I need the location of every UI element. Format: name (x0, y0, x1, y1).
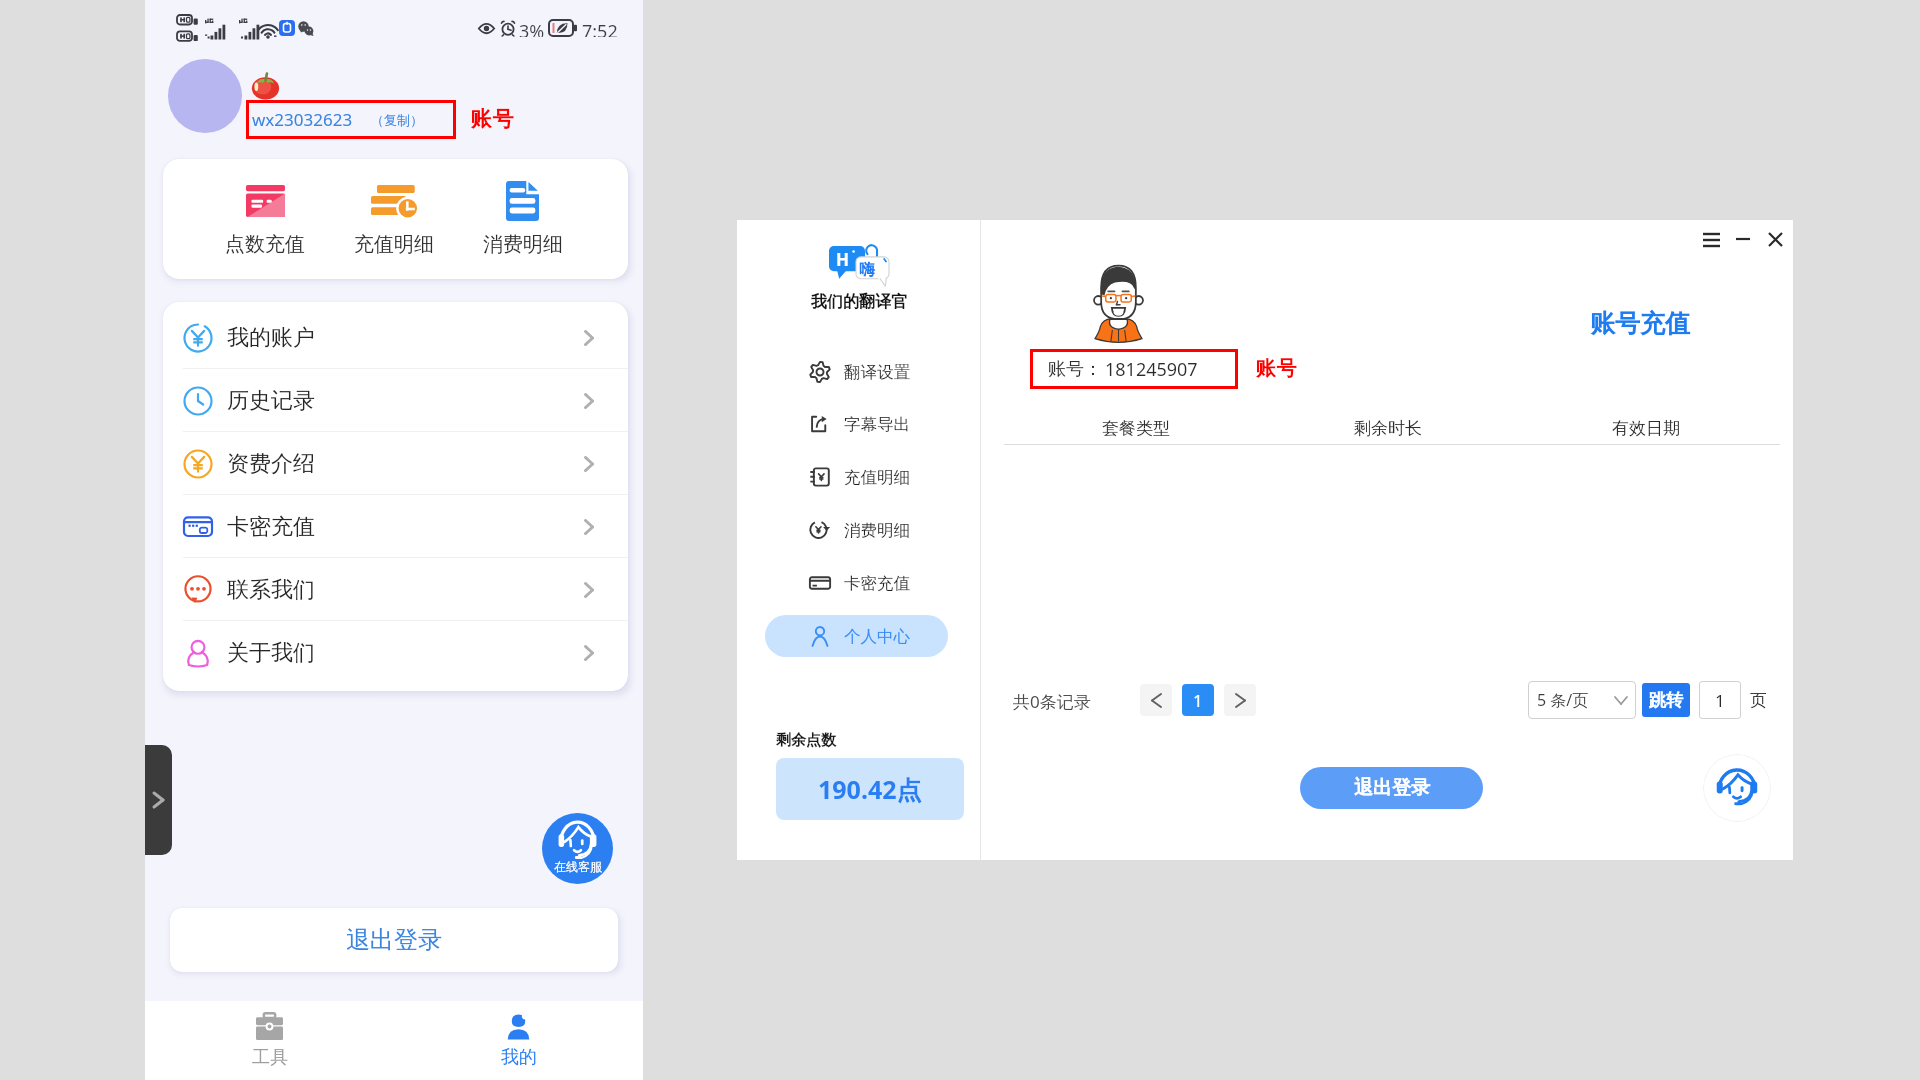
button[interactable]: 翻译设置 (765, 351, 948, 393)
staticText: 7:52 (582, 19, 618, 37)
button[interactable]: 点数充值 (201, 159, 329, 279)
staticText: 1 (1193, 689, 1203, 712)
button[interactable]: 跳转 (1642, 683, 1690, 717)
staticText: 个人中心 (844, 626, 910, 647)
button[interactable]: 充值明细 (765, 456, 948, 498)
staticText: 联系我们 (227, 576, 315, 604)
staticText: 嗨 (859, 260, 875, 280)
staticText: 账号 (1255, 356, 1297, 381)
staticText: 充值明细 (844, 467, 910, 488)
staticText: 有效日期 (1612, 418, 1680, 439)
staticText: 套餐类型 (1102, 418, 1170, 439)
button[interactable]: 5 条/页 (1528, 681, 1636, 719)
staticText: 账号充值 (1590, 308, 1690, 339)
button[interactable]: wx23032623 (246, 100, 456, 139)
button[interactable]: 下一页 (1224, 684, 1256, 716)
staticText: 3% (519, 19, 545, 37)
staticText: 关于我们 (227, 639, 315, 667)
button[interactable]: 最小化 (1729, 225, 1757, 253)
button[interactable]: 上一页 (1140, 684, 1172, 716)
button[interactable]: 菜单 (1697, 225, 1725, 253)
staticText: 工具 (252, 1046, 288, 1069)
button[interactable]: 在线客服 (542, 813, 613, 884)
button[interactable]: 消费明细 (765, 509, 948, 551)
button[interactable]: 1 (1699, 681, 1741, 719)
staticText: 账号： (1048, 358, 1102, 381)
button[interactable]: 退出登录 (1300, 767, 1483, 809)
staticText: 消费明细 (844, 520, 910, 541)
staticText: 1 (1715, 689, 1725, 712)
button[interactable]: 退出登录 (170, 908, 618, 972)
staticText: 剩余时长 (1354, 418, 1422, 439)
staticText: wx23032623 (252, 108, 353, 131)
staticText: 190.42点 (818, 772, 922, 806)
staticText: 181245907 (1105, 357, 1198, 382)
button[interactable]: 账号 (1255, 356, 1297, 381)
button[interactable]: 关于我们 (163, 621, 628, 684)
button[interactable]: 我的账户 (163, 306, 628, 369)
staticText: 共0条记录 (1013, 690, 1091, 713)
staticText: 5 条/页 (1537, 689, 1589, 711)
staticText: 在线客服 (554, 859, 602, 874)
staticText: 页 (1750, 690, 1767, 711)
button[interactable]: 卡密充值 (163, 495, 628, 558)
staticText: 退出登录 (1354, 776, 1430, 800)
staticText: 字幕导出 (844, 414, 910, 435)
staticText: 账号 (470, 106, 514, 132)
staticText: H (836, 248, 850, 271)
staticText: 翻译设置 (844, 362, 910, 383)
staticText: 历史记录 (227, 387, 315, 415)
staticText: 资费介绍 (227, 450, 315, 478)
button[interactable]: 我的 (394, 1001, 643, 1080)
button[interactable]: 在线客服 (1703, 754, 1771, 822)
staticText: 消费明细 (483, 232, 563, 257)
button[interactable]: 消费明细 (458, 159, 587, 279)
staticText: （复制） (371, 112, 423, 128)
staticText: 跳转 (1649, 690, 1683, 711)
button[interactable]: 工具 (145, 1001, 394, 1080)
staticText: 我的 (501, 1046, 537, 1069)
staticText: 充值明细 (354, 232, 434, 257)
staticText: 退出登录 (346, 925, 442, 955)
staticText: 我们的翻译官 (811, 292, 907, 312)
button[interactable]: 充值明细 (329, 159, 458, 279)
button[interactable]: 展开 (145, 745, 172, 855)
staticText: 点数充值 (225, 232, 305, 257)
staticText: 剩余点数 (776, 731, 836, 750)
button[interactable]: 个人中心 (765, 615, 948, 657)
button[interactable]: 联系我们 (163, 558, 628, 621)
button[interactable]: 1 (1182, 684, 1214, 716)
button[interactable]: 账号充值 (1590, 308, 1690, 339)
staticText: 卡密充值 (844, 573, 910, 594)
button[interactable]: 卡密充值 (765, 562, 948, 604)
staticText: 卡密充值 (227, 513, 315, 541)
button[interactable]: 资费介绍 (163, 432, 628, 495)
staticText: 我的账户 (227, 324, 315, 352)
button[interactable]: 账号： (1030, 349, 1238, 389)
button[interactable]: 字幕导出 (765, 403, 948, 445)
button[interactable]: 历史记录 (163, 369, 628, 432)
button[interactable]: 关闭 (1761, 225, 1789, 253)
